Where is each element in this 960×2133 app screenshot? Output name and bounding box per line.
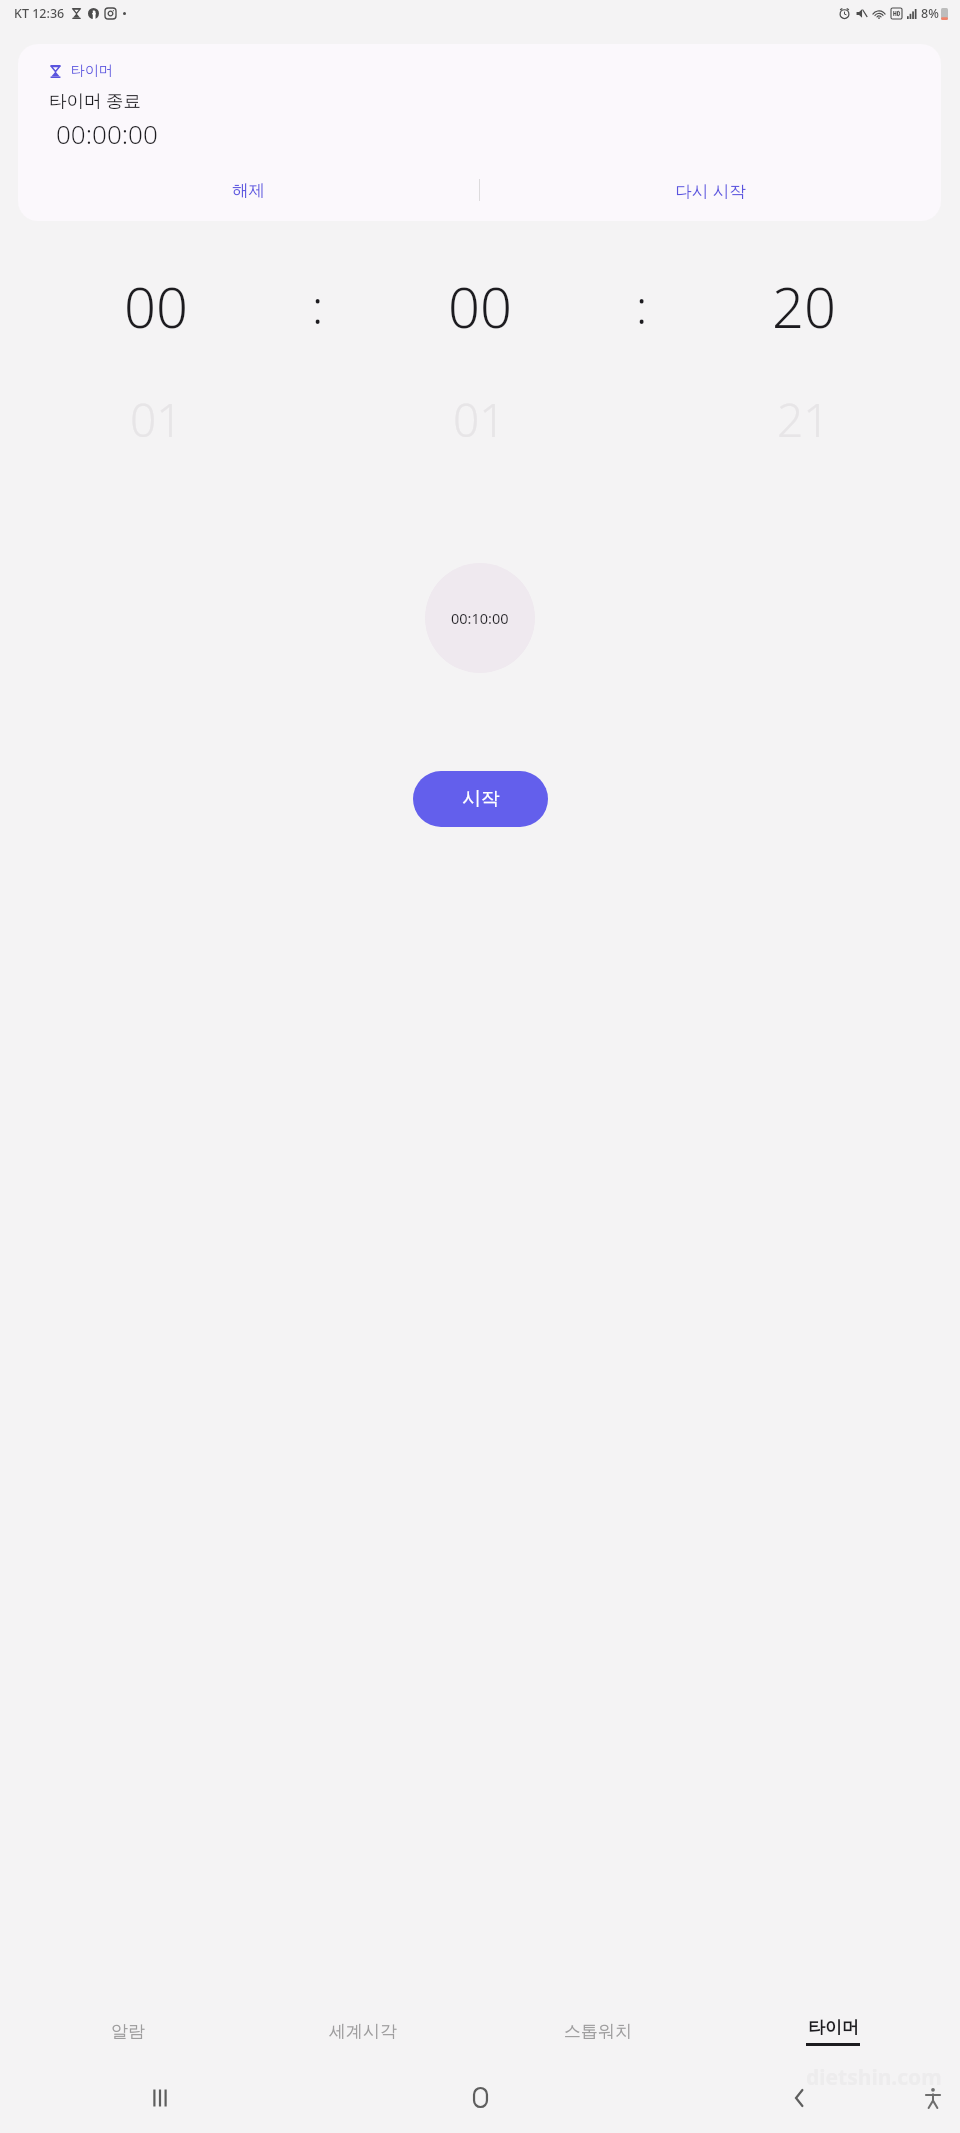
staticText: 타이머 종료	[49, 88, 142, 112]
button[interactable]: 00	[324, 268, 636, 344]
button[interactable]: 다시 시작	[480, 167, 941, 213]
button[interactable]: 스톱워치	[480, 2000, 715, 2062]
button[interactable]: Home	[320, 2062, 640, 2133]
staticText: 00:00:00	[56, 116, 158, 151]
staticText: :	[312, 275, 324, 338]
button[interactable]: 타이머	[715, 2000, 950, 2062]
staticText: 59	[453, 161, 506, 224]
button[interactable]: Recent apps	[0, 2062, 320, 2133]
staticText: 01	[453, 388, 506, 451]
staticText: KT 12:36	[14, 5, 65, 22]
button[interactable]: Back	[640, 2062, 960, 2133]
button[interactable]: 세계시각	[245, 2000, 480, 2062]
button[interactable]: 해제	[18, 167, 479, 213]
staticText: 01	[130, 388, 183, 451]
staticText: 타이머	[808, 2017, 859, 2038]
staticText: 00	[448, 268, 512, 344]
staticText: 다시 시작	[675, 179, 746, 202]
staticText: 8%	[921, 5, 939, 22]
staticText: 타이머	[71, 62, 113, 80]
button[interactable]: 시작	[413, 771, 548, 827]
staticText: 00:10:00	[451, 608, 509, 628]
button[interactable]: 00	[0, 268, 312, 344]
staticText: :	[636, 275, 648, 338]
staticText: 시작	[462, 787, 500, 811]
button[interactable]: 20	[648, 268, 960, 344]
button[interactable]: 알람	[10, 2000, 245, 2062]
staticText: dietshin.com	[806, 2063, 942, 2092]
button[interactable]: 타이머	[18, 44, 941, 221]
button[interactable]: 00:10:00	[425, 563, 535, 673]
staticText: 21	[777, 388, 830, 451]
staticText: 알람	[111, 2021, 145, 2042]
staticText: 세계시각	[329, 2021, 397, 2042]
staticText: 20	[772, 268, 836, 344]
staticText: 00	[124, 268, 188, 344]
staticText: 해제	[232, 180, 265, 201]
button[interactable]: Accessibility	[922, 2087, 944, 2109]
staticText: 스톱워치	[564, 2021, 632, 2042]
